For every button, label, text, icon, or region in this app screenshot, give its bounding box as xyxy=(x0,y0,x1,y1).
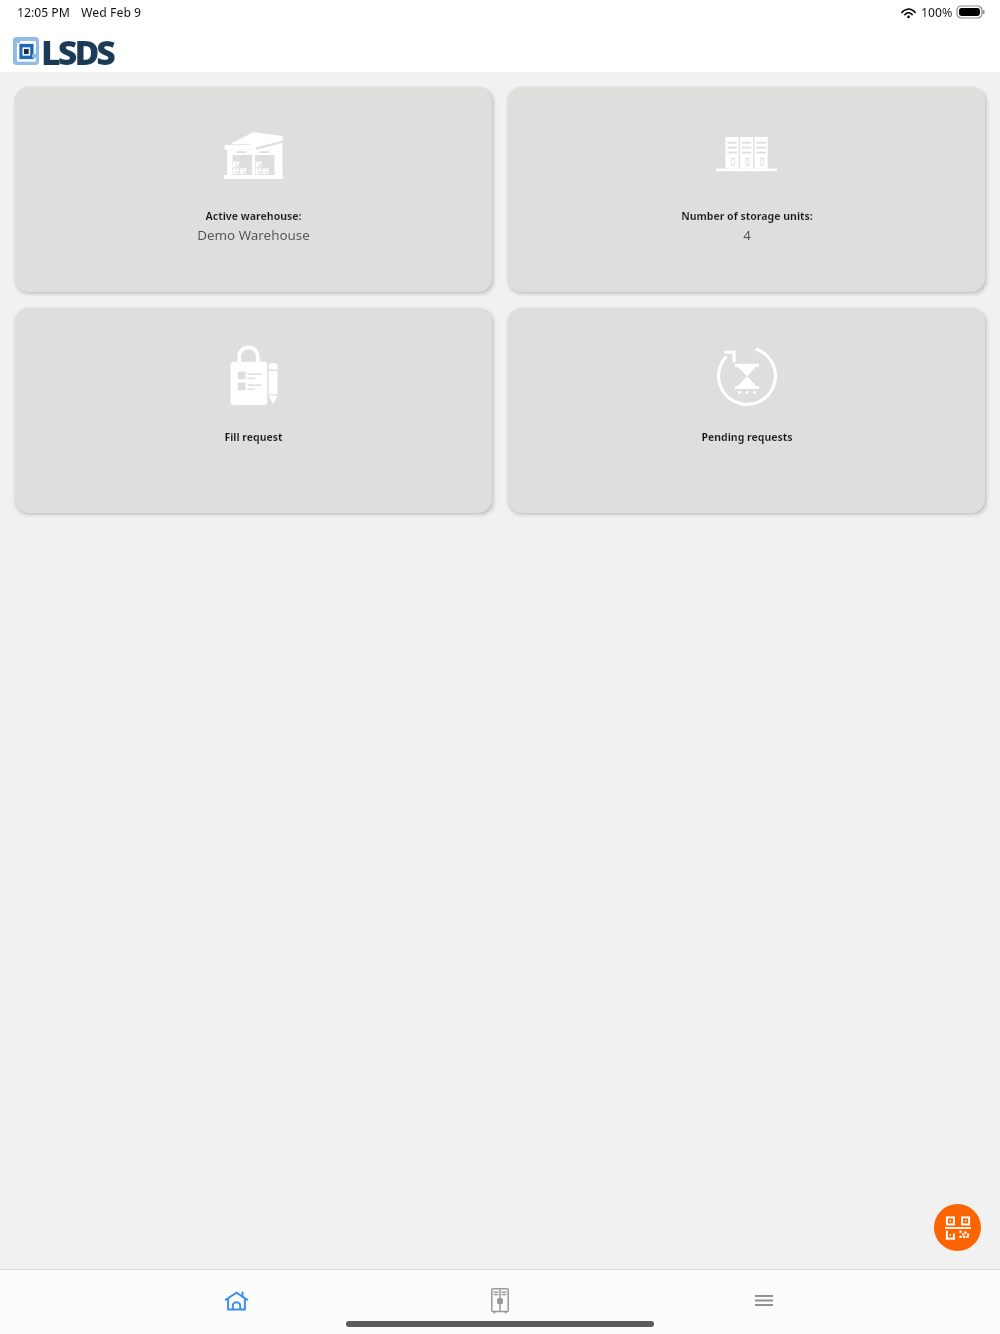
staticText: Active warehouse: xyxy=(205,209,302,223)
staticText: Number of storage units: xyxy=(681,209,813,223)
staticText: Pending requests xyxy=(701,430,793,444)
button[interactable]: Scan QR code xyxy=(934,1204,981,1251)
staticText: 100% xyxy=(921,4,953,21)
button[interactable]: Pending requests xyxy=(508,308,985,513)
staticText: LSDS xyxy=(41,29,113,75)
button[interactable]: Storage units xyxy=(368,1270,632,1334)
button[interactable]: Number of storage units: xyxy=(508,87,985,292)
staticText: Wed Feb 9 xyxy=(81,4,142,21)
button[interactable]: Home xyxy=(104,1270,368,1334)
staticText: Fill request xyxy=(224,430,283,444)
button[interactable]: Menu xyxy=(632,1270,896,1334)
staticText: 4 xyxy=(743,226,751,244)
button[interactable]: Fill request xyxy=(15,308,492,513)
staticText: Demo Warehouse xyxy=(197,226,310,244)
button[interactable]: Active warehouse: xyxy=(15,87,492,292)
staticText: 12:05 PM xyxy=(17,4,70,21)
